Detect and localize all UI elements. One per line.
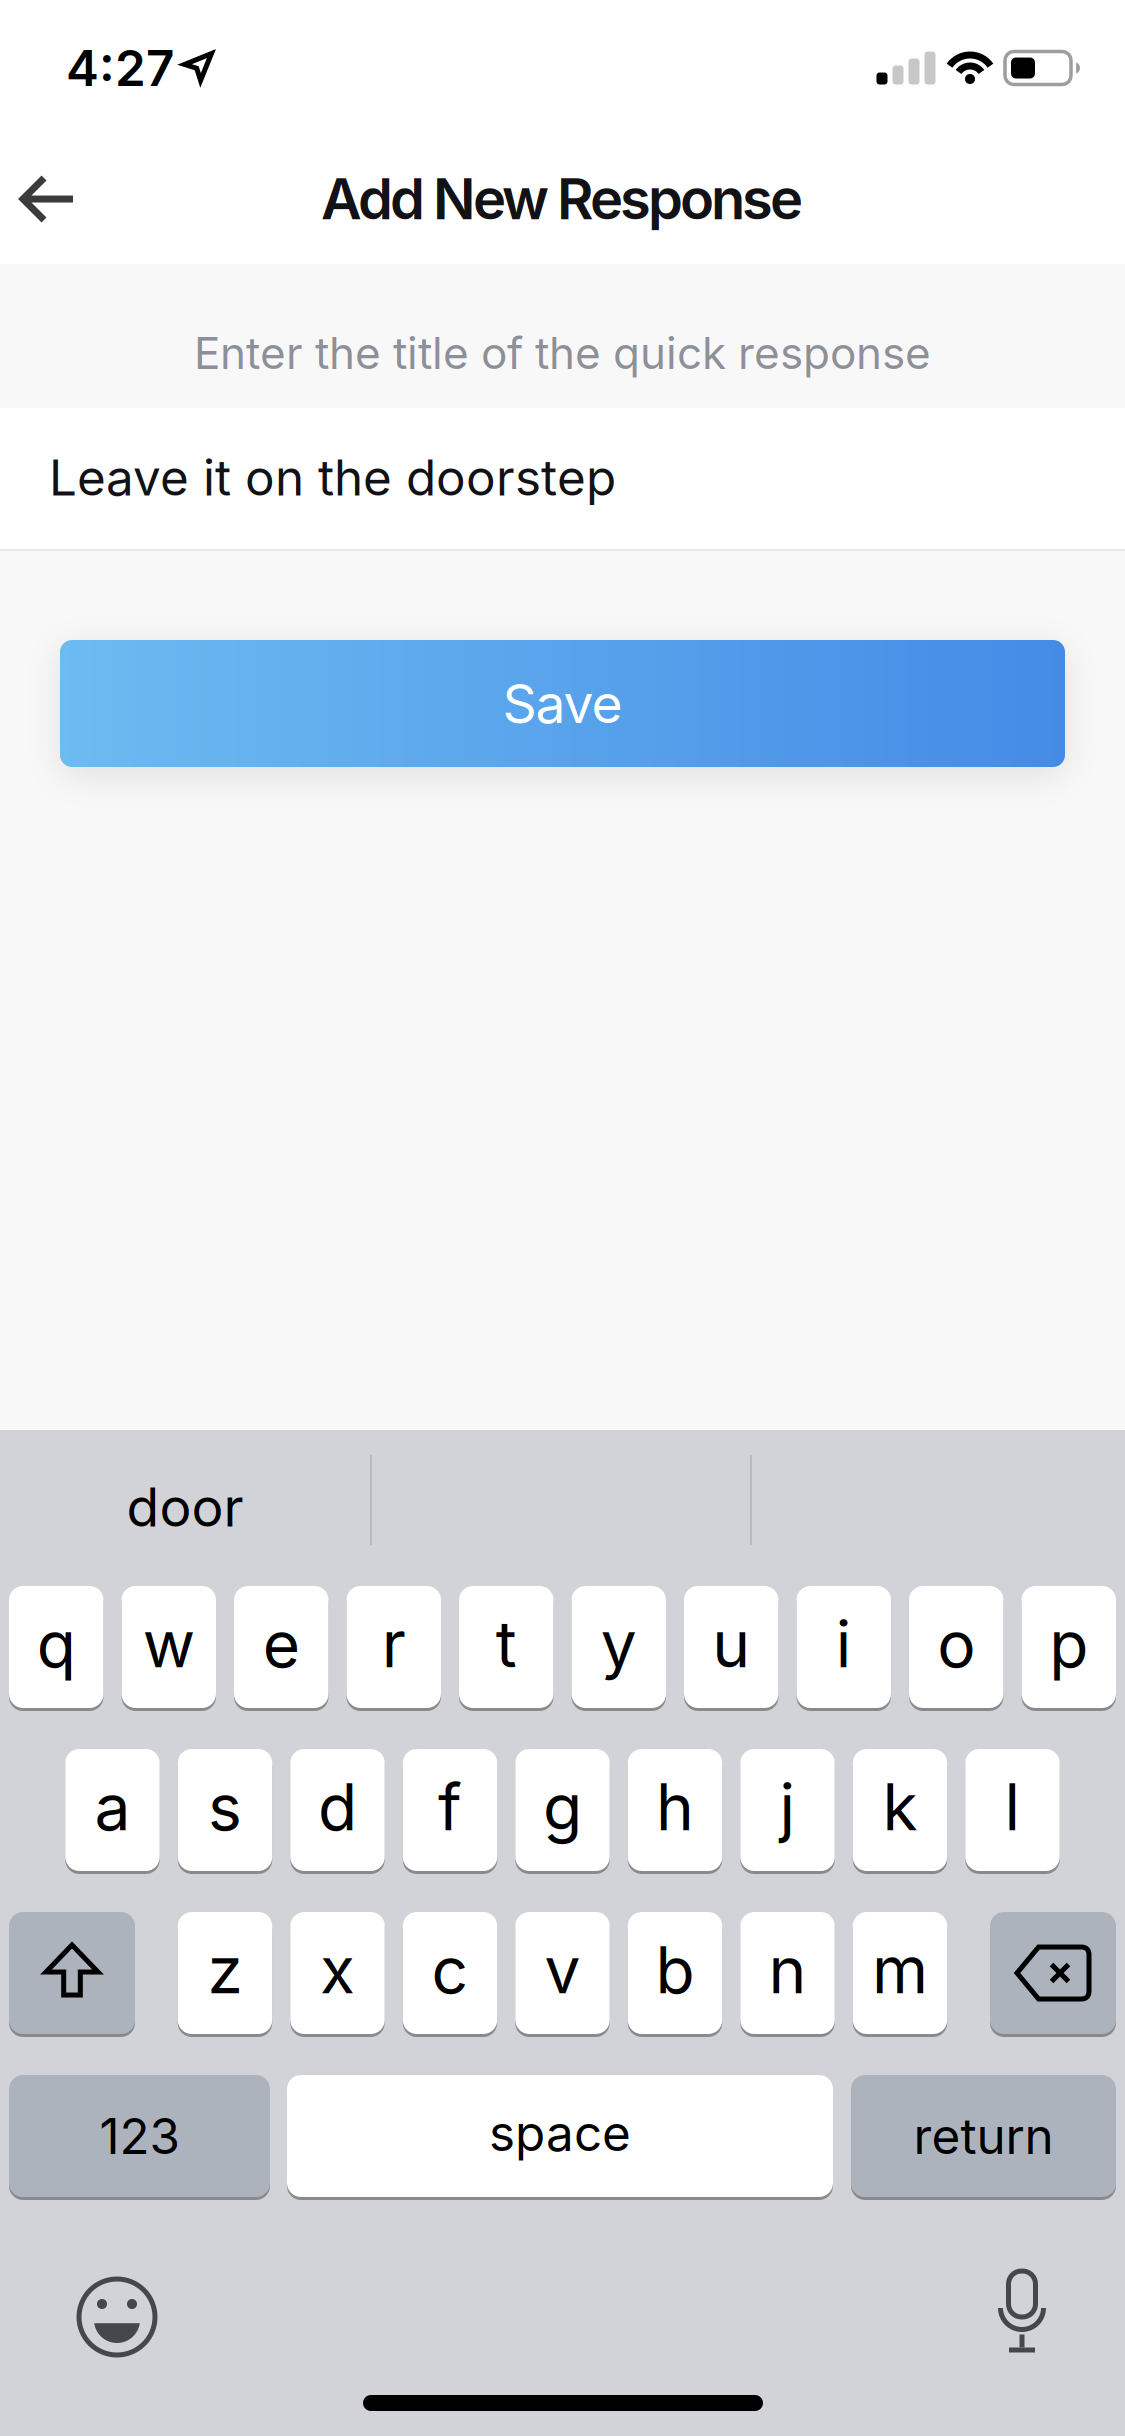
button[interactable]: door: [15, 1447, 355, 1567]
staticText: Save: [502, 671, 622, 736]
staticText: n: [768, 1931, 806, 2009]
staticText: i: [836, 1605, 852, 1683]
staticText: 4:27: [66, 38, 174, 98]
button[interactable]: return: [851, 2073, 1116, 2199]
button[interactable]: Title: [0, 264, 1125, 408]
staticText: q: [37, 1605, 76, 1683]
staticText: p: [1049, 1605, 1088, 1683]
staticText: t: [496, 1605, 517, 1683]
button[interactable]: p: [1021, 1584, 1116, 1710]
staticText: s: [208, 1768, 242, 1846]
staticText: Leave it on the doorstep: [49, 448, 616, 507]
staticText: b: [655, 1931, 694, 2009]
button[interactable]: m: [853, 1910, 947, 2036]
staticText: 123: [99, 2106, 179, 2166]
button[interactable]: w: [121, 1584, 216, 1710]
button[interactable]: g: [515, 1747, 610, 1873]
button[interactable]: h: [628, 1747, 722, 1873]
staticText: Add New Response: [321, 165, 803, 233]
button[interactable]: v: [515, 1910, 610, 2036]
button[interactable]: space: [287, 2073, 833, 2199]
staticText: j: [779, 1768, 795, 1846]
button[interactable]: b: [628, 1910, 722, 2036]
button[interactable]: Shift: [9, 1910, 135, 2036]
staticText: f: [438, 1768, 462, 1846]
button[interactable]: t: [459, 1584, 553, 1710]
staticText: k: [882, 1768, 917, 1846]
staticText: l: [1004, 1768, 1020, 1846]
staticText: c: [431, 1931, 468, 2009]
button[interactable]: l: [965, 1747, 1060, 1873]
button[interactable]: q: [9, 1584, 103, 1710]
staticText: z: [207, 1931, 242, 2009]
button[interactable]: Delete: [990, 1910, 1116, 2036]
staticText: y: [601, 1605, 637, 1683]
button[interactable]: i: [796, 1584, 891, 1710]
button[interactable]: Emoji: [65, 2265, 169, 2369]
staticText: x: [320, 1931, 355, 2009]
staticText: return: [913, 2106, 1053, 2166]
button[interactable]: Dictate: [981, 2257, 1063, 2369]
staticText: w: [143, 1605, 195, 1683]
button[interactable]: y: [571, 1584, 666, 1710]
button[interactable]: j: [740, 1747, 835, 1873]
staticText: d: [318, 1768, 357, 1846]
staticText: e: [263, 1605, 300, 1683]
button[interactable]: f: [403, 1747, 497, 1873]
staticText: u: [712, 1605, 750, 1683]
button[interactable]: n: [740, 1910, 835, 2036]
button[interactable]: r: [346, 1584, 441, 1710]
staticText: m: [872, 1931, 928, 2009]
staticText: a: [94, 1768, 130, 1846]
staticText: r: [382, 1605, 406, 1683]
staticText: Enter the title of the quick response: [194, 326, 931, 380]
button[interactable]: s: [178, 1747, 272, 1873]
button[interactable]: Back: [3, 158, 93, 240]
button[interactable]: u: [684, 1584, 778, 1710]
staticText: v: [544, 1931, 580, 2009]
button[interactable]: x: [290, 1910, 385, 2036]
staticText: o: [937, 1605, 975, 1683]
button[interactable]: k: [853, 1747, 947, 1873]
button[interactable]: d: [290, 1747, 385, 1873]
staticText: space: [489, 2103, 631, 2163]
button[interactable]: e: [234, 1584, 328, 1710]
button[interactable]: c: [403, 1910, 497, 2036]
button[interactable]: 123: [9, 2073, 270, 2199]
staticText: h: [656, 1768, 694, 1846]
button[interactable]: Save: [60, 640, 1065, 767]
staticText: g: [543, 1768, 582, 1846]
button[interactable]: z: [178, 1910, 272, 2036]
button[interactable]: a: [65, 1747, 160, 1873]
staticText: door: [126, 1475, 243, 1539]
button[interactable]: o: [909, 1584, 1003, 1710]
button[interactable]: Response text: [0, 408, 1125, 549]
